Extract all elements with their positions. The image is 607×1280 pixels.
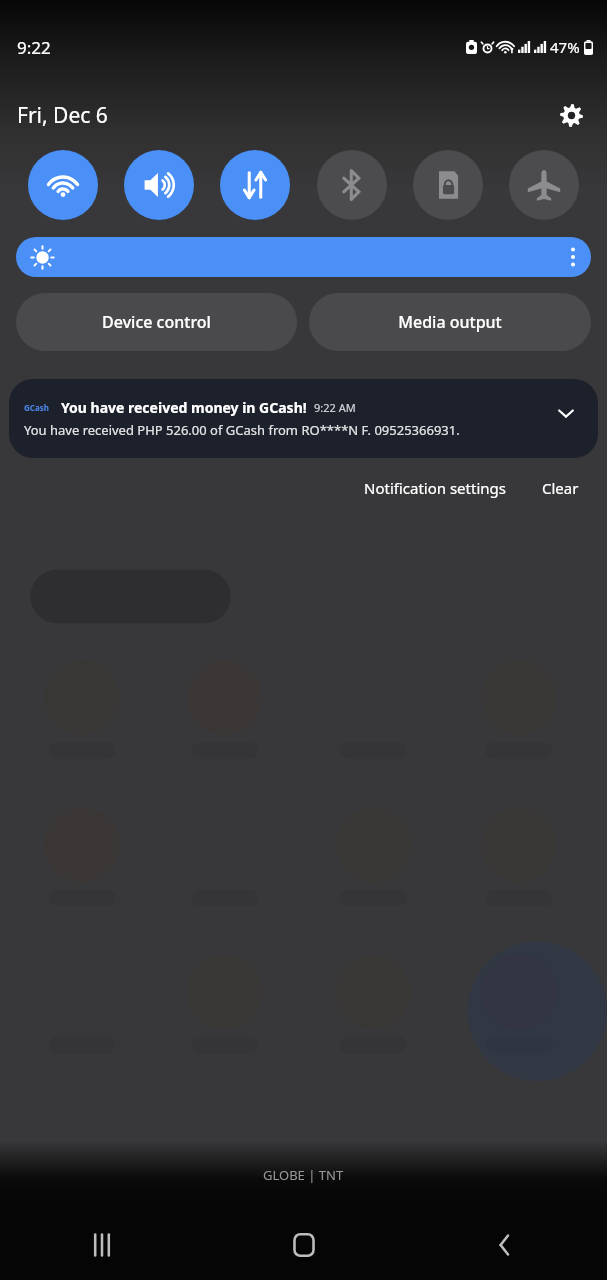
- staticText: You have received money in GCash!: [61, 398, 307, 417]
- staticText: 9:22: [17, 36, 51, 59]
- button[interactable]: Notification settings: [356, 472, 514, 504]
- staticText: GCash: [24, 402, 49, 413]
- button[interactable]: Back: [405, 1210, 607, 1280]
- button[interactable]: Bluetooth: [317, 150, 387, 220]
- button[interactable]: Home: [203, 1210, 405, 1280]
- staticText: You have received PHP 526.00 of GCash fr…: [24, 421, 460, 439]
- button[interactable]: Airplane mode: [509, 150, 579, 220]
- button[interactable]: Expand notification: [546, 393, 586, 433]
- button[interactable]: Mobile data: [220, 150, 290, 220]
- staticText: Media output: [398, 311, 502, 333]
- staticText: Device control: [102, 311, 211, 333]
- staticText: 9:22 AM: [314, 400, 356, 415]
- button[interactable]: Sound: [124, 150, 194, 220]
- staticText: Notification settings: [364, 478, 506, 498]
- button[interactable]: Clear: [534, 472, 587, 504]
- button[interactable]: Media output: [309, 293, 591, 351]
- button[interactable]: SIM lock: [413, 150, 483, 220]
- staticText: 47%: [550, 37, 580, 57]
- staticText: Fri, Dec 6: [17, 101, 108, 130]
- button[interactable]: Device control: [16, 293, 297, 351]
- button[interactable]: Wi-Fi: [28, 150, 98, 220]
- button[interactable]: Recent apps: [0, 1210, 203, 1280]
- button[interactable]: GCash: [9, 379, 598, 458]
- staticText: Clear: [542, 478, 579, 498]
- button[interactable]: Settings: [547, 91, 595, 139]
- staticText: GLOBE | TNT: [263, 1166, 344, 1184]
- button[interactable]: Brightness: [16, 237, 591, 277]
